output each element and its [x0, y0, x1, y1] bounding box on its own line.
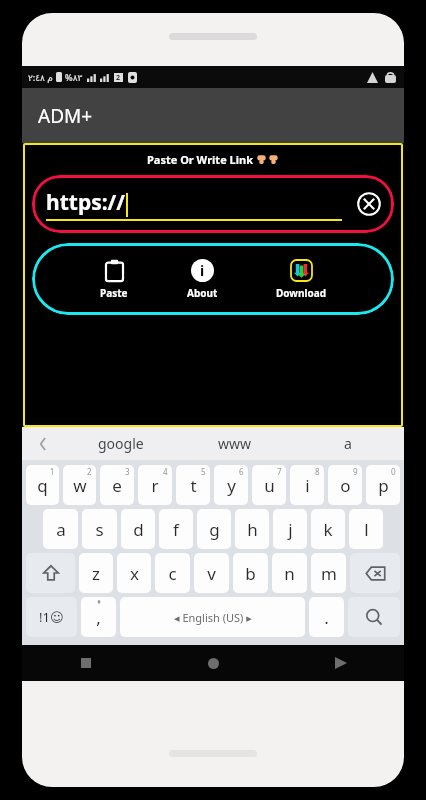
button[interactable]: f [159, 509, 193, 549]
button[interactable]: Recent apps [22, 645, 150, 681]
staticText: a [56, 518, 66, 541]
staticText: 9 [353, 466, 358, 477]
staticText: google [98, 434, 144, 453]
button[interactable]: u [252, 465, 286, 505]
staticText: v [207, 562, 216, 585]
button[interactable]: Previous suggestions [22, 427, 64, 460]
staticText: a [344, 434, 352, 453]
button[interactable]: j [273, 509, 307, 549]
staticText: f [173, 518, 179, 541]
button[interactable]: r [138, 465, 172, 505]
staticText: o [340, 474, 351, 497]
staticText: 2 [116, 73, 121, 82]
button[interactable]: a [43, 509, 78, 549]
staticText: k [323, 518, 333, 541]
button[interactable]: p [366, 465, 400, 505]
button[interactable]: t [176, 465, 210, 505]
button[interactable]: www [178, 427, 291, 460]
button[interactable]: Back [277, 645, 404, 681]
staticText: y [227, 474, 236, 497]
button[interactable]: g [197, 509, 231, 549]
button[interactable]: . [309, 597, 344, 637]
staticText: u [264, 474, 275, 497]
staticText: w [73, 474, 87, 497]
button[interactable]: c [155, 553, 190, 593]
staticText: م ٢:٤٨ [28, 71, 53, 83]
staticText: x [130, 562, 139, 585]
staticText: 1 [50, 466, 55, 477]
button[interactable]: i [290, 465, 324, 505]
button[interactable]: ◂ English (US) ▸ [120, 597, 305, 637]
staticText: t [190, 474, 197, 497]
staticText: j [288, 518, 293, 541]
button[interactable]: h [235, 509, 269, 549]
staticText: n [284, 562, 295, 585]
staticText: . [324, 606, 329, 629]
button[interactable]: q [26, 465, 59, 505]
staticText: q [37, 474, 48, 497]
staticText: Paste [100, 286, 128, 300]
staticText: c [168, 562, 177, 585]
staticText: ADM+ [38, 103, 93, 129]
staticText: %٨٣ [65, 71, 83, 83]
button[interactable]: google [64, 427, 178, 460]
staticText: 2 [87, 466, 92, 477]
staticText: r [151, 474, 159, 497]
button[interactable]: , [81, 597, 116, 637]
staticText: i [200, 261, 205, 280]
staticText: ◂ English (US) ▸ [174, 610, 252, 625]
staticText: p [378, 474, 389, 497]
staticText: s [95, 518, 104, 541]
staticText: g [209, 518, 220, 541]
button[interactable]: v [194, 553, 229, 593]
staticText: 0 [391, 466, 396, 477]
button[interactable]: z [79, 553, 113, 593]
staticText: 3 [125, 466, 130, 477]
staticText: 8 [315, 466, 320, 477]
staticText: www [218, 434, 252, 453]
button[interactable]: s [82, 509, 117, 549]
staticText: 4 [163, 466, 168, 477]
staticText: 6 [239, 466, 244, 477]
staticText: About [187, 286, 218, 300]
button[interactable]: Backspace [350, 553, 400, 593]
button[interactable]: w [63, 465, 96, 505]
staticText: b [245, 562, 256, 585]
staticText: 7 [277, 466, 282, 477]
button[interactable]: b [233, 553, 268, 593]
button[interactable]: Shift [26, 553, 75, 593]
button[interactable]: a [291, 427, 404, 460]
button[interactable]: Search [348, 597, 400, 637]
staticText: !1☺ [39, 608, 64, 626]
button[interactable]: i [183, 257, 222, 302]
staticText: 5 [201, 466, 206, 477]
button[interactable]: l [349, 509, 383, 549]
button[interactable]: e [100, 465, 134, 505]
staticText: Paste Or Write Link [147, 152, 253, 167]
button[interactable]: Clear [357, 192, 381, 216]
staticText: i [305, 474, 310, 497]
staticText: e [112, 474, 122, 497]
button[interactable]: Paste [96, 257, 132, 302]
staticText: d [133, 518, 144, 541]
button[interactable]: k [311, 509, 345, 549]
button[interactable]: x [117, 553, 151, 593]
button[interactable]: Home [150, 645, 277, 681]
button[interactable]: m [311, 553, 346, 593]
button[interactable]: n [272, 553, 307, 593]
button[interactable]: d [121, 509, 155, 549]
button[interactable]: Symbols [26, 597, 77, 637]
button[interactable]: Download [272, 257, 330, 302]
staticText: , [96, 606, 101, 629]
staticText: m [321, 562, 337, 585]
staticText: h [247, 518, 258, 541]
button[interactable]: https:// [32, 175, 394, 233]
staticText: z [92, 562, 100, 585]
button[interactable]: y [214, 465, 248, 505]
button[interactable]: o [328, 465, 362, 505]
staticText: https:// [46, 188, 126, 217]
staticText: Download [276, 286, 326, 300]
staticText: l [364, 518, 369, 541]
